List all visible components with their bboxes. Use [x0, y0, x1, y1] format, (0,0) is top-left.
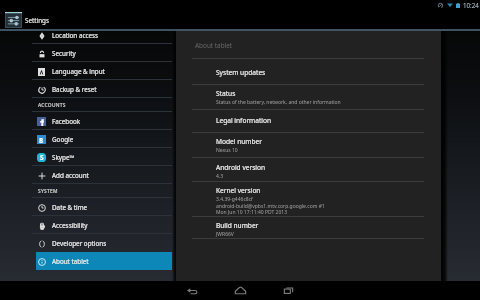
staticText: Build number — [216, 221, 259, 230]
staticText: Developer options — [52, 239, 107, 248]
staticText: Location access — [52, 31, 99, 40]
staticText: Status — [216, 89, 236, 98]
button[interactable]: Recent apps — [273, 281, 303, 300]
staticText: Accessibility — [52, 221, 88, 230]
button[interactable]: Date & time — [36, 198, 172, 216]
staticText: About tablet — [195, 41, 233, 50]
button[interactable]: Add account — [36, 166, 172, 184]
button[interactable]: Developer options — [36, 234, 172, 252]
staticText: 3.4.39-g446c8cf android-build@vpbs1.mtv.… — [216, 196, 325, 215]
staticText: Model number — [216, 137, 262, 146]
staticText: Nexus 10 — [216, 147, 238, 154]
staticText: Language & input — [52, 67, 105, 76]
staticText: 10:24 — [463, 1, 479, 9]
button[interactable]: Legal information — [176, 110, 441, 133]
button[interactable]: Kernel version — [176, 182, 441, 217]
staticText: Settings — [25, 16, 49, 25]
button[interactable]: S — [36, 148, 172, 166]
staticText: Add account — [52, 171, 89, 180]
button[interactable]: Home — [225, 281, 255, 300]
button[interactable]: Backup & reset — [36, 80, 172, 98]
button[interactable]: Android version — [176, 158, 441, 182]
button[interactable]: Build number — [176, 217, 441, 239]
staticText: Kernel version — [216, 186, 261, 195]
button[interactable]: About tablet — [36, 252, 172, 270]
staticText: Google — [52, 135, 74, 144]
button[interactable]: Security — [36, 44, 172, 62]
button[interactable]: Language & input — [36, 62, 172, 80]
staticText: Status of the battery, network, and othe… — [216, 99, 341, 106]
button[interactable]: Accessibility — [36, 216, 172, 234]
staticText: Skype™ — [52, 153, 75, 162]
staticText: About tablet — [52, 257, 89, 266]
button[interactable]: Facebook — [36, 112, 172, 130]
staticText: Security — [52, 49, 76, 58]
staticText: Android version — [216, 163, 266, 172]
button[interactable]: 8 — [36, 130, 172, 148]
button[interactable]: Model number — [176, 133, 441, 158]
staticText: 4.3 — [216, 173, 224, 180]
button[interactable]: Settings — [5, 12, 49, 28]
staticText: Date & time — [52, 203, 88, 212]
button[interactable]: Location access — [36, 31, 172, 44]
staticText: ACCOUNTS — [38, 102, 66, 109]
button[interactable]: Status — [176, 85, 441, 110]
button[interactable]: System updates — [176, 59, 441, 85]
staticText: System updates — [216, 68, 266, 77]
button[interactable]: Back — [177, 281, 207, 300]
staticText: S — [40, 153, 44, 162]
staticText: Legal information — [216, 116, 272, 125]
staticText: Backup & reset — [52, 85, 97, 94]
staticText: SYSTEM — [38, 188, 58, 195]
staticText: JWR66V — [216, 231, 234, 238]
staticText: 8 — [39, 135, 44, 144]
staticText: Facebook — [52, 117, 81, 126]
other: Settings — [5, 12, 22, 28]
